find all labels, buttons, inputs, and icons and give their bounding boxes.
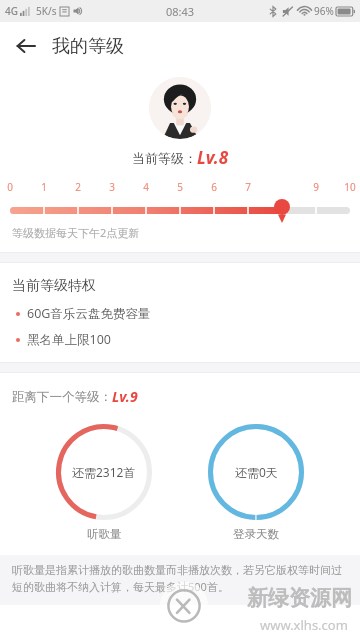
staticText: 6	[207, 180, 221, 194]
staticText: 4	[139, 180, 153, 194]
staticText: 黑名单上限100	[27, 331, 111, 348]
staticText: 当前等级特权	[12, 277, 96, 295]
staticText: www.xlhs.com	[260, 616, 348, 634]
staticText: Lv.9	[112, 387, 138, 406]
staticText: 还需2312首	[72, 464, 136, 480]
staticText: 2	[71, 180, 85, 194]
button[interactable]: Back	[4, 24, 48, 68]
staticText: 5	[173, 180, 187, 194]
staticText: 听歌量	[87, 527, 122, 541]
staticText: 新绿资源网	[247, 585, 352, 611]
staticText: 当前等级：	[132, 150, 197, 166]
staticText: 0	[3, 180, 17, 194]
staticText: 3	[105, 180, 119, 194]
staticText: 96%	[314, 4, 334, 18]
staticText: 我的等级	[52, 35, 124, 58]
staticText: 10	[343, 180, 357, 194]
staticText: 7	[241, 180, 255, 194]
staticText: 5K/s	[36, 4, 57, 18]
staticText: 听歌量是指累计播放的歌曲数量而非播放次数，若另它版权等时间过短的歌曲将不纳入计算…	[12, 563, 348, 595]
staticText: Lv.8	[197, 146, 229, 169]
staticText: 等级数据每天下午2点更新	[12, 225, 140, 240]
staticText: 1	[37, 180, 51, 194]
staticText: 距离下一个等级：	[12, 389, 112, 405]
staticText: 4G	[5, 4, 18, 18]
staticText: 9	[309, 180, 323, 194]
staticText: 登录天数	[233, 527, 279, 541]
staticText: 60G音乐云盘免费容量	[27, 305, 151, 322]
staticText: 08:43	[166, 4, 195, 19]
staticText: 还需0天	[235, 464, 278, 480]
